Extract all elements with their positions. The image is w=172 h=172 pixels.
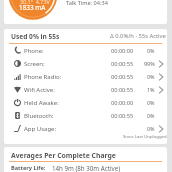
staticText: Screen: <box>24 60 45 68</box>
other: Screen: <box>14 60 21 67</box>
button[interactable]: Bluetooth: <box>4 111 167 124</box>
staticText: 1833 mA <box>19 3 46 12</box>
staticText: 0% <box>147 47 155 54</box>
staticText: 00:00:55 <box>111 86 134 94</box>
staticText: Bluetooth: <box>24 112 54 120</box>
staticText: Δ 0.0%/h · 55s Active <box>110 32 166 40</box>
staticText: Phone Radio: <box>24 73 62 81</box>
staticText: 0% <box>147 99 155 106</box>
staticText: 00:00:00 <box>111 99 134 107</box>
staticText: 00:00:00 <box>111 47 134 55</box>
other: App Usage: <box>14 125 21 132</box>
staticText: 99% <box>144 60 155 67</box>
button[interactable]: Phone Radio: <box>4 72 167 85</box>
staticText: 1% <box>147 86 155 93</box>
other: Wifi Active: <box>14 86 21 93</box>
staticText: 30.1° 4.73V <box>20 0 50 5</box>
button[interactable]: Held Awake: <box>4 98 167 111</box>
staticText: Since Last Unplugged <box>123 133 167 139</box>
button[interactable]: Screen: <box>4 59 167 72</box>
staticText: 0% <box>147 73 155 80</box>
staticText: Battery Life: <box>11 164 46 172</box>
other: Phone: <box>14 47 21 54</box>
staticText: 0% <box>147 112 155 119</box>
staticText: 14h 9m (8h 30m Active) <box>52 164 120 172</box>
staticText: Held Awake: <box>24 99 59 107</box>
button[interactable]: Wifi Active: <box>4 85 167 98</box>
staticText: 00:00:55 <box>111 73 134 81</box>
staticText: Averages Per Complete Charge <box>11 151 116 160</box>
staticText: 00:00:55 <box>111 60 134 68</box>
staticText: Talk Time: 04:34 <box>66 0 108 7</box>
staticText: App Usage: <box>24 125 57 133</box>
staticText: Phone: <box>24 47 44 55</box>
other: Bluetooth: <box>14 112 21 119</box>
other: Held Awake: <box>14 99 21 106</box>
button[interactable]: Phone: <box>4 46 167 59</box>
staticText: 00:00:55 <box>111 112 134 120</box>
button[interactable]: 30.1° 4.73V <box>4 0 167 24</box>
staticText: 0% <box>147 125 155 132</box>
button[interactable]: App Usage: <box>4 124 167 137</box>
staticText: Wifi Active: <box>24 86 55 94</box>
other: Phone Radio: <box>14 73 21 80</box>
staticText: Used 0% in 55s <box>11 32 60 41</box>
